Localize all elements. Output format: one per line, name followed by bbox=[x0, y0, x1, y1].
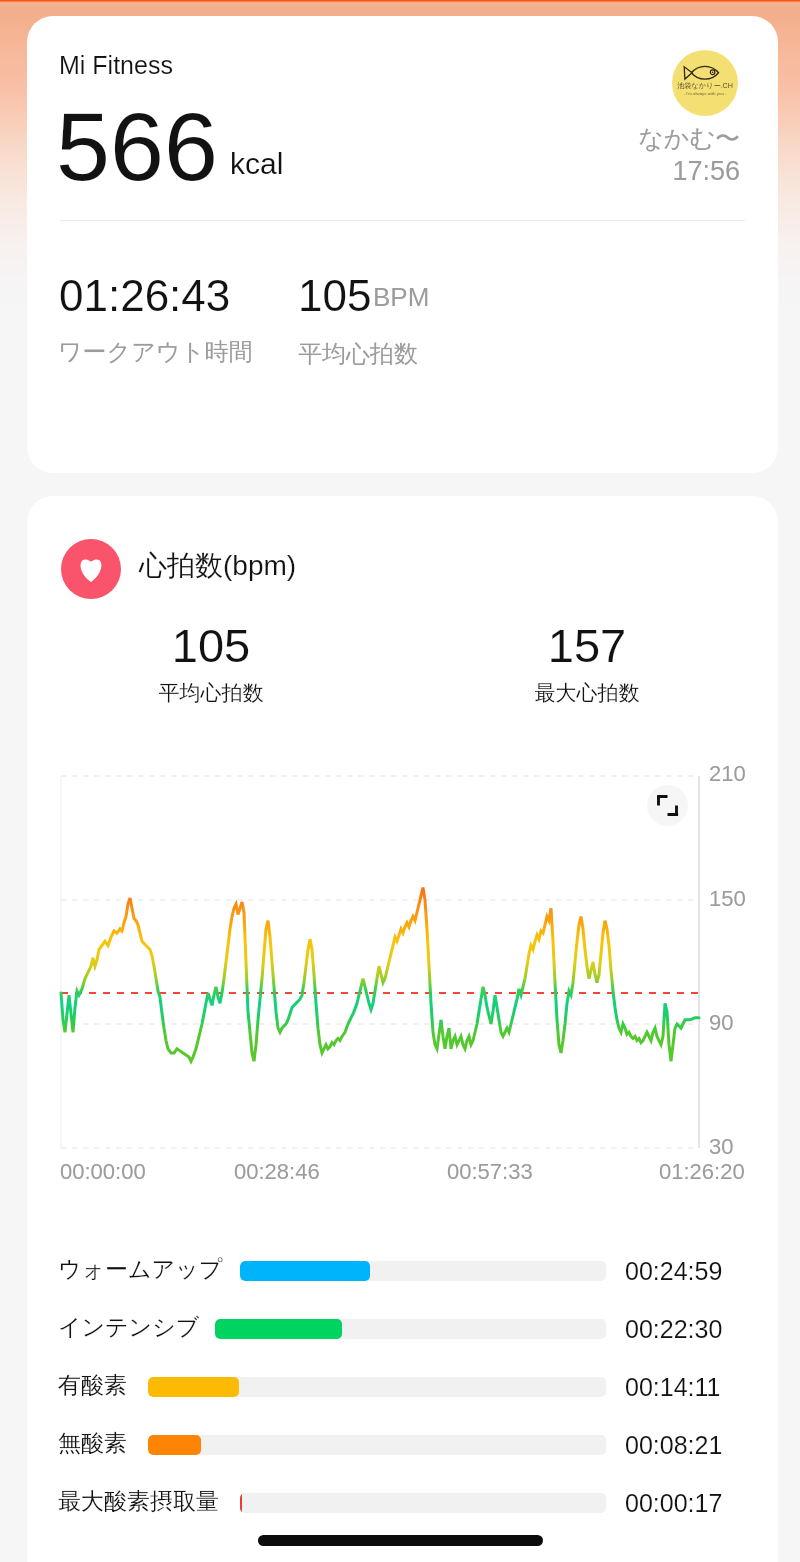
staticText: 566 bbox=[56, 92, 218, 200]
staticText: ウォームアップ bbox=[58, 1255, 223, 1284]
staticText: 00:00:00 bbox=[60, 1159, 146, 1184]
staticText: インテンシブ bbox=[58, 1313, 200, 1342]
staticText: なかむ〜 bbox=[440, 123, 740, 154]
staticText: 17:56 bbox=[440, 156, 740, 186]
staticText: 平均心拍数 bbox=[298, 339, 418, 369]
staticText: 00:24:59 bbox=[625, 1257, 723, 1285]
button[interactable] bbox=[27, 1416, 778, 1474]
staticText: 最大酸素摂取量 bbox=[58, 1487, 219, 1516]
staticText: 150 bbox=[709, 886, 746, 911]
staticText: 210 bbox=[709, 761, 746, 786]
staticText: kcal bbox=[230, 147, 284, 181]
staticText: 01:26:20 bbox=[659, 1159, 745, 1184]
staticText: 105 bbox=[61, 619, 361, 672]
button[interactable] bbox=[27, 1242, 778, 1300]
staticText: 無酸素 bbox=[58, 1429, 127, 1458]
button[interactable] bbox=[27, 1300, 778, 1358]
staticText: 00:28:46 bbox=[234, 1159, 320, 1184]
button[interactable]: Expand chart bbox=[647, 785, 688, 826]
staticText: 00:22:30 bbox=[625, 1315, 723, 1343]
button[interactable]: Profile bbox=[672, 50, 738, 116]
staticText: 157 bbox=[437, 619, 737, 672]
staticText: BPM bbox=[373, 282, 430, 311]
staticText: 01:26:43 bbox=[59, 271, 231, 320]
staticText: 最大心拍数 bbox=[437, 680, 737, 706]
staticText: 30 bbox=[709, 1134, 734, 1159]
staticText: 心拍数(bpm) bbox=[139, 548, 297, 583]
staticText: 池袋なかりー.CH bbox=[672, 81, 738, 90]
staticText: ワークアウト時間 bbox=[58, 337, 253, 367]
button[interactable] bbox=[27, 1474, 778, 1532]
staticText: 00:00:17 bbox=[625, 1489, 723, 1517]
staticText: - I'm always with you - bbox=[672, 91, 738, 96]
staticText: 有酸素 bbox=[58, 1371, 127, 1400]
staticText: 00:08:21 bbox=[625, 1431, 723, 1459]
staticText: 平均心拍数 bbox=[61, 680, 361, 706]
button[interactable] bbox=[27, 1358, 778, 1416]
staticText: 105 bbox=[298, 271, 372, 320]
staticText: 90 bbox=[709, 1010, 734, 1035]
staticText: 00:14:11 bbox=[625, 1373, 721, 1401]
staticText: Mi Fitness bbox=[59, 51, 173, 79]
staticText: 00:57:33 bbox=[447, 1159, 533, 1184]
